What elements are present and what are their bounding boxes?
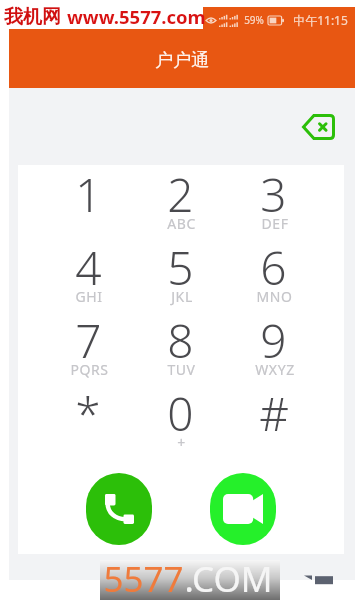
button[interactable]: Video call <box>210 473 276 545</box>
button[interactable]: 2 <box>134 165 227 238</box>
staticText: 59% <box>244 13 264 27</box>
staticText: * <box>75 382 101 445</box>
staticText: 4 <box>75 236 102 299</box>
staticText: 0 <box>167 382 194 445</box>
staticText: PQRS <box>70 360 109 379</box>
button[interactable]: 6 <box>227 238 320 311</box>
staticText: .COM <box>184 555 273 595</box>
button[interactable]: 5 <box>134 238 227 311</box>
staticText: 我机网 <box>4 5 61 29</box>
staticText: 7 <box>75 309 102 372</box>
staticText: MNO <box>256 287 293 306</box>
button[interactable]: 1 <box>42 165 134 238</box>
staticText: ABC <box>167 214 196 233</box>
staticText: 6 <box>260 236 287 299</box>
button[interactable]: 3 <box>227 165 320 238</box>
button[interactable]: 4 <box>42 238 134 311</box>
staticText: 1 <box>75 163 102 226</box>
staticText: 5577 <box>103 555 184 595</box>
button[interactable]: 7 <box>42 311 134 384</box>
staticText: 8 <box>167 309 194 372</box>
staticText: DEF <box>261 214 289 233</box>
staticText: www.5577.com <box>67 4 206 29</box>
staticText: 2 <box>167 163 194 226</box>
staticText: 中午11:15 <box>293 12 348 28</box>
staticText: GHI <box>75 287 103 306</box>
staticText: + <box>177 433 186 452</box>
staticText: # <box>259 382 289 445</box>
staticText: TUV <box>167 360 196 379</box>
button[interactable]: 9 <box>227 311 320 384</box>
staticText: 9 <box>260 309 287 372</box>
staticText: 户户通 <box>155 49 209 72</box>
staticText: WXYZ <box>255 360 295 379</box>
button[interactable]: 0 <box>134 384 227 457</box>
button[interactable]: Call <box>86 473 152 545</box>
button[interactable]: * <box>42 384 134 457</box>
staticText: 3 <box>260 163 287 226</box>
staticText: JKL <box>171 287 193 306</box>
button[interactable]: Delete <box>294 103 342 151</box>
staticText: 5 <box>167 236 194 299</box>
button[interactable]: # <box>227 384 320 457</box>
button[interactable]: 8 <box>134 311 227 384</box>
